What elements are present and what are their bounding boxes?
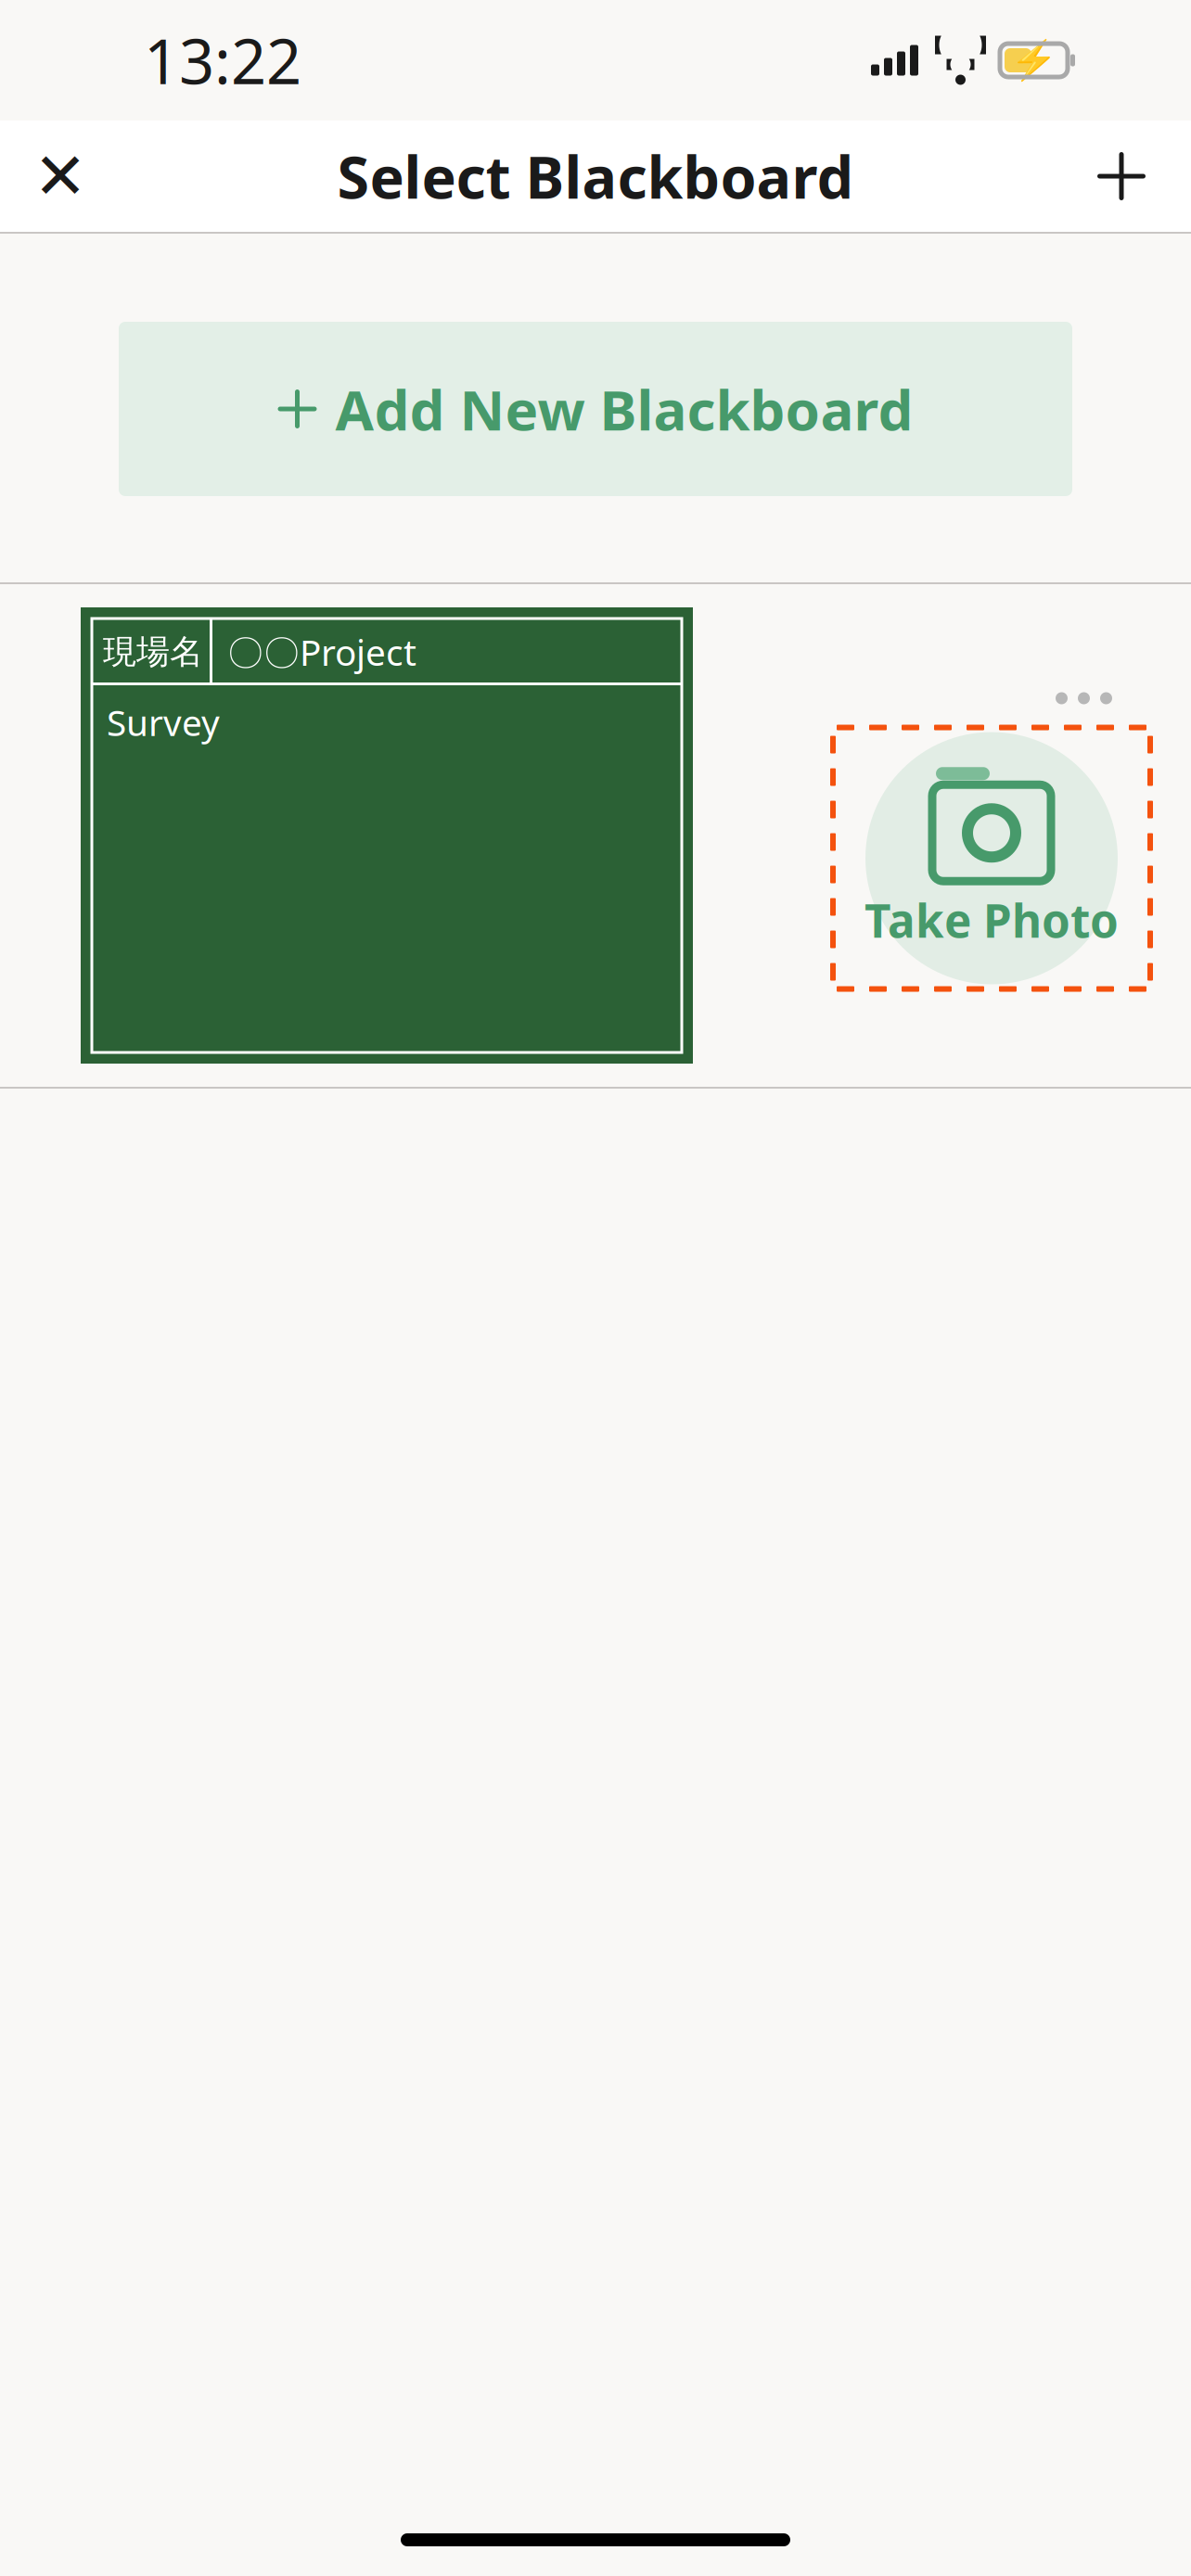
staticText: Select Blackboard: [337, 138, 854, 215]
staticText: Take Photo: [864, 889, 1119, 950]
staticText: 現場名: [103, 631, 203, 672]
staticText: Add New Blackboard: [335, 372, 913, 446]
staticText: ⚡: [1010, 38, 1057, 82]
button[interactable]: Take Photo: [830, 725, 1153, 992]
button[interactable]: Add blackboard: [1070, 125, 1172, 227]
button[interactable]: Close: [9, 125, 111, 227]
button[interactable]: Add New Blackboard: [119, 322, 1072, 496]
staticText: ✕: [33, 140, 87, 213]
button[interactable]: More options: [1039, 679, 1129, 717]
staticText: 13:22: [144, 19, 301, 101]
button[interactable]: Blackboard 〇〇Project, Survey: [81, 607, 693, 1064]
staticText: 〇〇Project: [227, 628, 416, 676]
staticText: Survey: [107, 698, 220, 746]
